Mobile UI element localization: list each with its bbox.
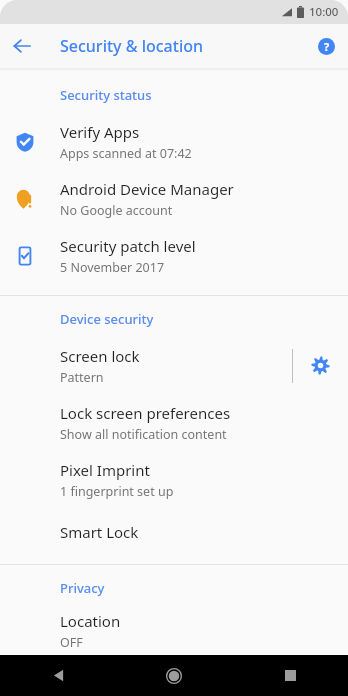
staticText: Pixel Imprint: [60, 460, 150, 480]
staticText: Verify Apps: [60, 122, 140, 142]
button[interactable]: Location: [0, 606, 348, 655]
staticText: Device security: [60, 310, 154, 328]
button[interactable]: Android Device Manager: [0, 170, 348, 227]
staticText: Security patch level: [60, 236, 196, 256]
button[interactable]: Screen lock settings: [293, 337, 348, 394]
staticText: OFF: [60, 634, 83, 651]
staticText: Pattern: [60, 369, 104, 386]
button[interactable]: Security patch level: [0, 227, 348, 284]
button[interactable]: Navigate up: [0, 24, 44, 68]
staticText: Location: [60, 611, 121, 631]
staticText: Android Device Manager: [60, 179, 234, 199]
staticText: Apps scanned at 07:42: [60, 145, 192, 162]
button[interactable]: Help: [304, 24, 348, 68]
button[interactable]: Lock screen preferences: [0, 394, 348, 451]
button[interactable]: Smart Lock: [0, 508, 348, 555]
button[interactable]: Recent apps: [232, 655, 348, 696]
staticText: Lock screen preferences: [60, 403, 231, 423]
staticText: 1 fingerprint set up: [60, 483, 174, 500]
staticText: 10:00: [309, 4, 339, 20]
button[interactable]: Screen lock: [0, 337, 292, 394]
staticText: Security & location: [60, 35, 304, 57]
staticText: Screen lock: [60, 346, 140, 366]
button[interactable]: Verify Apps: [0, 113, 348, 170]
staticText: 5 November 2017: [60, 259, 165, 276]
button[interactable]: Back: [0, 655, 116, 696]
staticText: Privacy: [60, 579, 105, 597]
button[interactable]: Home: [116, 655, 232, 696]
staticText: Security status: [60, 86, 152, 104]
staticText: ?: [324, 39, 330, 54]
staticText: No Google account: [60, 202, 173, 219]
button[interactable]: Pixel Imprint: [0, 451, 348, 508]
staticText: Show all notification content: [60, 426, 227, 443]
staticText: Smart Lock: [60, 522, 139, 542]
